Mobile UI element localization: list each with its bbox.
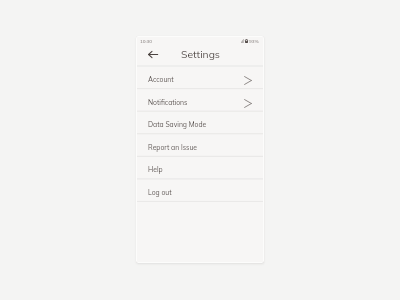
staticText: Help — [148, 165, 163, 174]
button[interactable]: Help — [137, 156, 263, 179]
staticText: 93% — [249, 38, 259, 44]
staticText: Data Saving Mode — [148, 120, 207, 129]
staticText: Account — [148, 75, 174, 84]
staticText: Notifications — [148, 98, 188, 107]
staticText: 10:30 — [140, 38, 153, 44]
button[interactable]: Notifications — [137, 89, 263, 112]
button[interactable]: Back — [145, 48, 161, 64]
button[interactable]: Report an Issue — [137, 134, 263, 157]
button[interactable]: Account — [137, 66, 263, 89]
staticText: Log out — [148, 188, 172, 197]
button[interactable]: Data Saving Mode — [137, 111, 263, 134]
button[interactable]: Log out — [137, 179, 263, 202]
staticText: Settings — [181, 48, 220, 61]
staticText: Report an Issue — [148, 143, 198, 152]
